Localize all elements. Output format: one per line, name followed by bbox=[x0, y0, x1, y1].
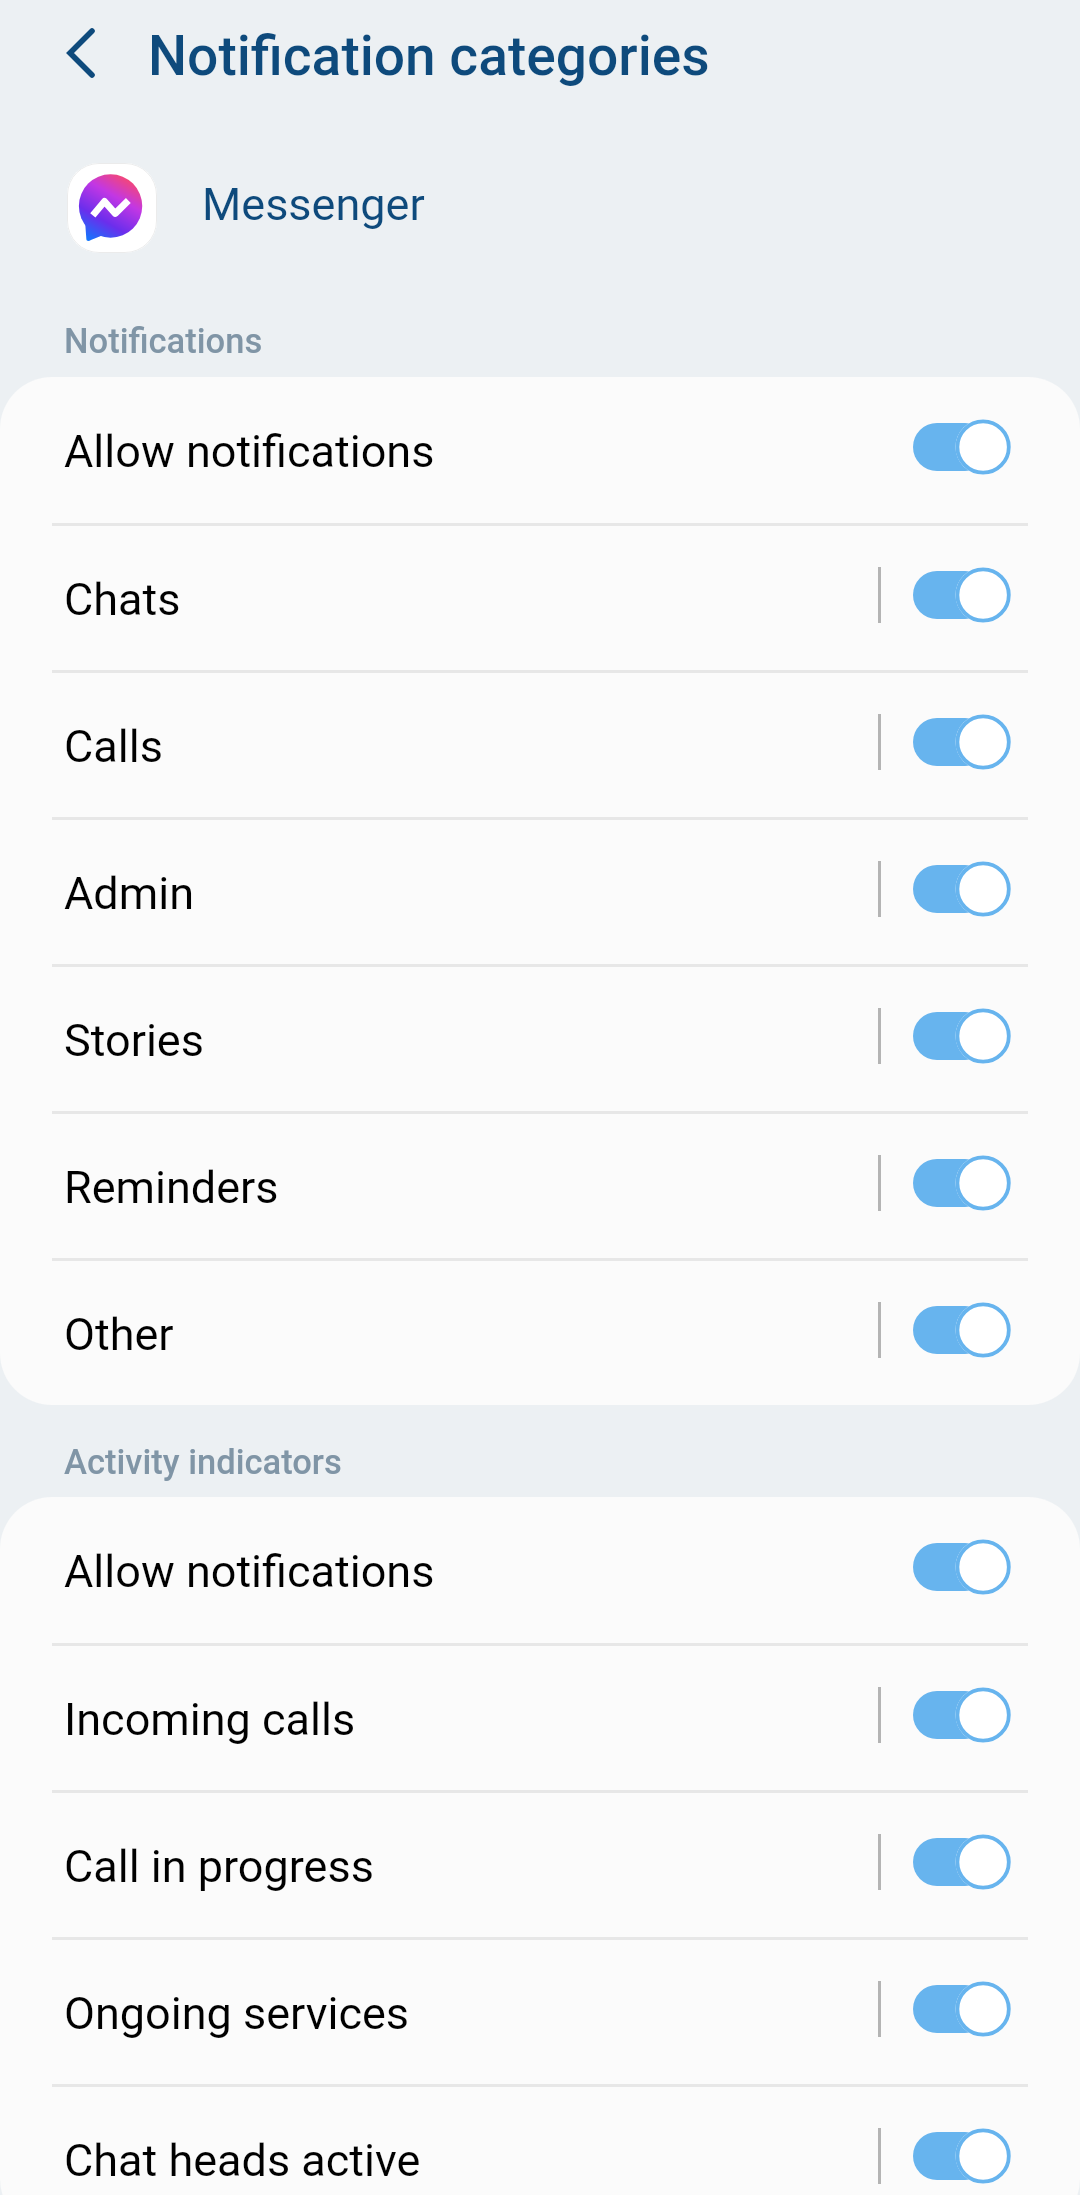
staticText: Incoming calls bbox=[64, 1693, 878, 1746]
staticText: Ongoing services bbox=[64, 1987, 878, 2040]
staticText: Notification categories bbox=[148, 24, 710, 88]
staticText: Reminders bbox=[64, 1161, 878, 1214]
button[interactable]: Ongoing services bbox=[0, 1940, 1080, 2084]
button[interactable]: Calls switch, on bbox=[913, 714, 1011, 770]
staticText: Other bbox=[64, 1308, 878, 1361]
button[interactable]: Chat heads active switch, on bbox=[913, 2128, 1011, 2184]
staticText: Notifications bbox=[64, 321, 263, 361]
staticText: Allow notifications bbox=[64, 425, 878, 478]
staticText: Messenger bbox=[202, 178, 425, 231]
staticText: Calls bbox=[64, 720, 878, 773]
button[interactable]: Stories bbox=[0, 967, 1080, 1111]
button[interactable]: Incoming calls bbox=[0, 1646, 1080, 1790]
button[interactable]: Reminders bbox=[0, 1114, 1080, 1258]
button[interactable]: Allow notifications switch, on bbox=[913, 419, 1011, 475]
staticText: Chat heads active bbox=[64, 2134, 878, 2187]
button[interactable]: Navigate up bbox=[33, 5, 129, 101]
button[interactable]: Incoming calls switch, on bbox=[913, 1687, 1011, 1743]
button[interactable]: Call in progress switch, on bbox=[913, 1834, 1011, 1890]
staticText: Chats bbox=[64, 573, 878, 626]
button[interactable]: Reminders switch, on bbox=[913, 1155, 1011, 1211]
button[interactable]: Chats switch, on bbox=[913, 567, 1011, 623]
staticText: Call in progress bbox=[64, 1840, 878, 1893]
button[interactable]: Other switch, on bbox=[913, 1302, 1011, 1358]
button[interactable]: Admin bbox=[0, 820, 1080, 964]
button[interactable]: Calls bbox=[0, 673, 1080, 817]
button[interactable]: Stories switch, on bbox=[913, 1008, 1011, 1064]
button[interactable]: Allow notifications bbox=[0, 377, 1080, 523]
staticText: Allow notifications bbox=[64, 1545, 878, 1598]
button[interactable]: Allow notifications bbox=[0, 1497, 1080, 1643]
button[interactable]: Allow notifications switch, on bbox=[913, 1539, 1011, 1595]
button[interactable]: Chats bbox=[0, 526, 1080, 670]
staticText: Admin bbox=[64, 867, 878, 920]
staticText: Activity indicators bbox=[64, 1442, 342, 1482]
button[interactable]: Chat heads active bbox=[0, 2087, 1080, 2195]
button[interactable]: Admin switch, on bbox=[913, 861, 1011, 917]
button[interactable]: Other bbox=[0, 1261, 1080, 1405]
button[interactable]: Call in progress bbox=[0, 1793, 1080, 1937]
button[interactable]: Ongoing services switch, on bbox=[913, 1981, 1011, 2037]
staticText: Stories bbox=[64, 1014, 878, 1067]
